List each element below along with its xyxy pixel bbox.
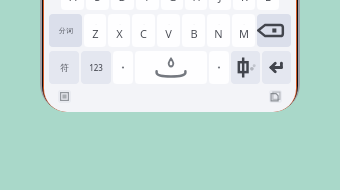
- button[interactable]: .: [257, 0, 279, 10]
- button[interactable]: Backspace: [257, 14, 291, 47]
- staticText: K: [241, 0, 248, 4]
- button[interactable]: .: [84, 14, 106, 47]
- staticText: H: [192, 0, 201, 4]
- staticText: C: [140, 26, 147, 41]
- button[interactable]: Chinese English toggle: [231, 51, 260, 84]
- button[interactable]: .: [185, 0, 207, 10]
- button[interactable]: .: [132, 14, 155, 47]
- button[interactable]: Period: [209, 51, 229, 84]
- button[interactable]: Keyboard layout: [58, 90, 71, 103]
- button[interactable]: .: [209, 0, 231, 10]
- button[interactable]: Clipboard: [269, 90, 282, 103]
- button[interactable]: 123: [81, 51, 111, 84]
- button[interactable]: .: [61, 0, 84, 10]
- button[interactable]: 分词: [49, 14, 82, 47]
- button[interactable]: 符: [49, 51, 79, 84]
- staticText: Z: [92, 26, 99, 41]
- staticText: B: [190, 26, 198, 41]
- staticText: L: [265, 0, 271, 4]
- button[interactable]: Enter: [262, 51, 291, 84]
- staticText: J: [218, 0, 222, 4]
- button[interactable]: .: [207, 14, 230, 47]
- staticText: D: [118, 0, 127, 4]
- button[interactable]: .: [157, 14, 180, 47]
- staticText: 符: [60, 62, 69, 73]
- button[interactable]: .: [182, 14, 205, 47]
- button[interactable]: .: [136, 0, 159, 10]
- button[interactable]: Comma: [113, 51, 133, 84]
- button[interactable]: .: [108, 14, 130, 47]
- staticText: S: [94, 0, 101, 4]
- staticText: M: [239, 26, 249, 41]
- staticText: 分词: [59, 26, 73, 35]
- button[interactable]: Space: [135, 51, 207, 84]
- staticText: V: [165, 26, 172, 41]
- staticText: G: [168, 0, 177, 4]
- button[interactable]: .: [111, 0, 134, 10]
- staticText: N: [214, 26, 223, 41]
- staticText: X: [116, 26, 123, 41]
- staticText: F: [145, 0, 151, 4]
- button[interactable]: .: [232, 14, 255, 47]
- staticText: 123: [89, 62, 103, 73]
- button[interactable]: .: [233, 0, 255, 10]
- button[interactable]: .: [86, 0, 109, 10]
- staticText: A: [69, 0, 77, 4]
- button[interactable]: .: [161, 0, 183, 10]
